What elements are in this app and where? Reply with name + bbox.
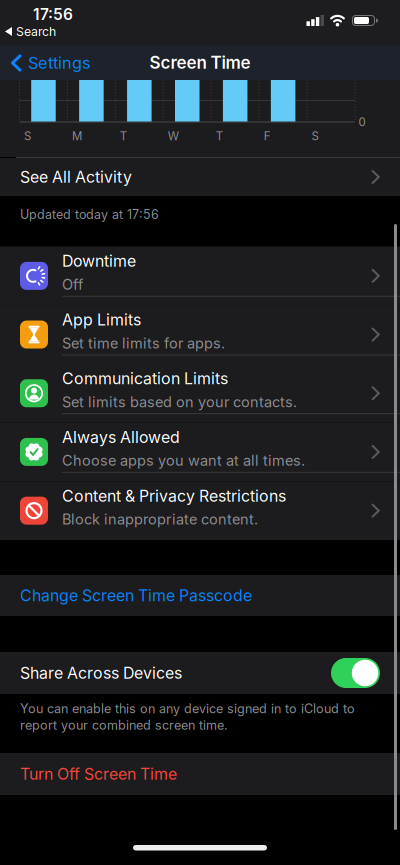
staticText: T	[120, 129, 127, 143]
staticText: Updated today at 17:56	[20, 207, 159, 222]
staticText: W	[168, 129, 179, 143]
staticText: Block inappropriate content.	[62, 510, 258, 528]
staticText: Screen Time	[149, 52, 250, 73]
staticText: F	[264, 129, 271, 143]
staticText: S	[24, 129, 31, 143]
button[interactable]: Change Screen Time Passcode	[0, 575, 400, 616]
staticText: report your combined screen time.	[20, 718, 228, 733]
staticText: See All Activity	[20, 167, 132, 187]
button[interactable]: See All Activity	[0, 158, 400, 196]
staticText: Settings	[28, 53, 91, 73]
button[interactable]: Always Allowed	[0, 423, 400, 481]
staticText: Communication Limits	[62, 369, 228, 388]
staticText: Share Across Devices	[20, 663, 182, 683]
button[interactable]: App Limits	[0, 305, 400, 364]
button[interactable]: Share Across Devices on	[331, 658, 380, 688]
staticText: 17:56	[33, 5, 73, 24]
button[interactable]: Content & Privacy Restrictions	[0, 481, 400, 540]
staticText: Always Allowed	[62, 428, 180, 447]
staticText: Choose apps you want at all times.	[62, 452, 305, 469]
staticText: Content & Privacy Restrictions	[62, 486, 286, 505]
staticText: S	[312, 129, 319, 143]
button[interactable]: Communication Limits	[0, 364, 400, 423]
staticText: M	[72, 129, 82, 143]
button[interactable]: Downtime	[0, 246, 400, 305]
staticText: Downtime	[62, 251, 136, 271]
staticText: You can enable this on any device signed…	[20, 701, 355, 716]
button[interactable]: Back to Search	[0, 0, 51, 15]
staticText: Off	[62, 276, 83, 293]
staticText: Change Screen Time Passcode	[20, 586, 252, 605]
staticText: Set time limits for apps.	[62, 334, 225, 352]
staticText: T	[216, 129, 223, 143]
button[interactable]: Back to Settings	[0, 45, 80, 65]
staticText: Turn Off Screen Time	[20, 764, 177, 784]
staticText: Set limits based on your contacts.	[62, 393, 297, 411]
button[interactable]: Turn Off Screen Time	[0, 753, 400, 795]
staticText: App Limits	[62, 310, 141, 329]
staticText: 0	[358, 115, 365, 129]
staticText: Search	[16, 24, 56, 39]
